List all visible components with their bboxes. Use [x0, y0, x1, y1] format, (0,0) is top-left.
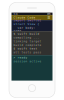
staticText: build complete — [13, 43, 41, 46]
staticText: $ swift build — [13, 32, 39, 35]
staticText: 100% — [46, 12, 50, 15]
button[interactable]: Claude Code — [11, 15, 52, 20]
staticText: session active — [13, 60, 41, 63]
staticText: compiling ... — [13, 36, 39, 39]
staticText: struct View { — [13, 22, 39, 26]
staticText: 9:41 — [13, 12, 17, 15]
staticText: ☰ — [47, 16, 50, 19]
staticText: $ swift test — [13, 47, 37, 50]
staticText: var body: some — [13, 26, 35, 32]
staticText: Claude Code — [13, 16, 35, 19]
staticText: linking target — [13, 40, 41, 43]
staticText: all tests pass — [13, 51, 41, 54]
staticText: import SwiftUI — [13, 19, 41, 22]
staticText: > ready — [13, 56, 27, 59]
